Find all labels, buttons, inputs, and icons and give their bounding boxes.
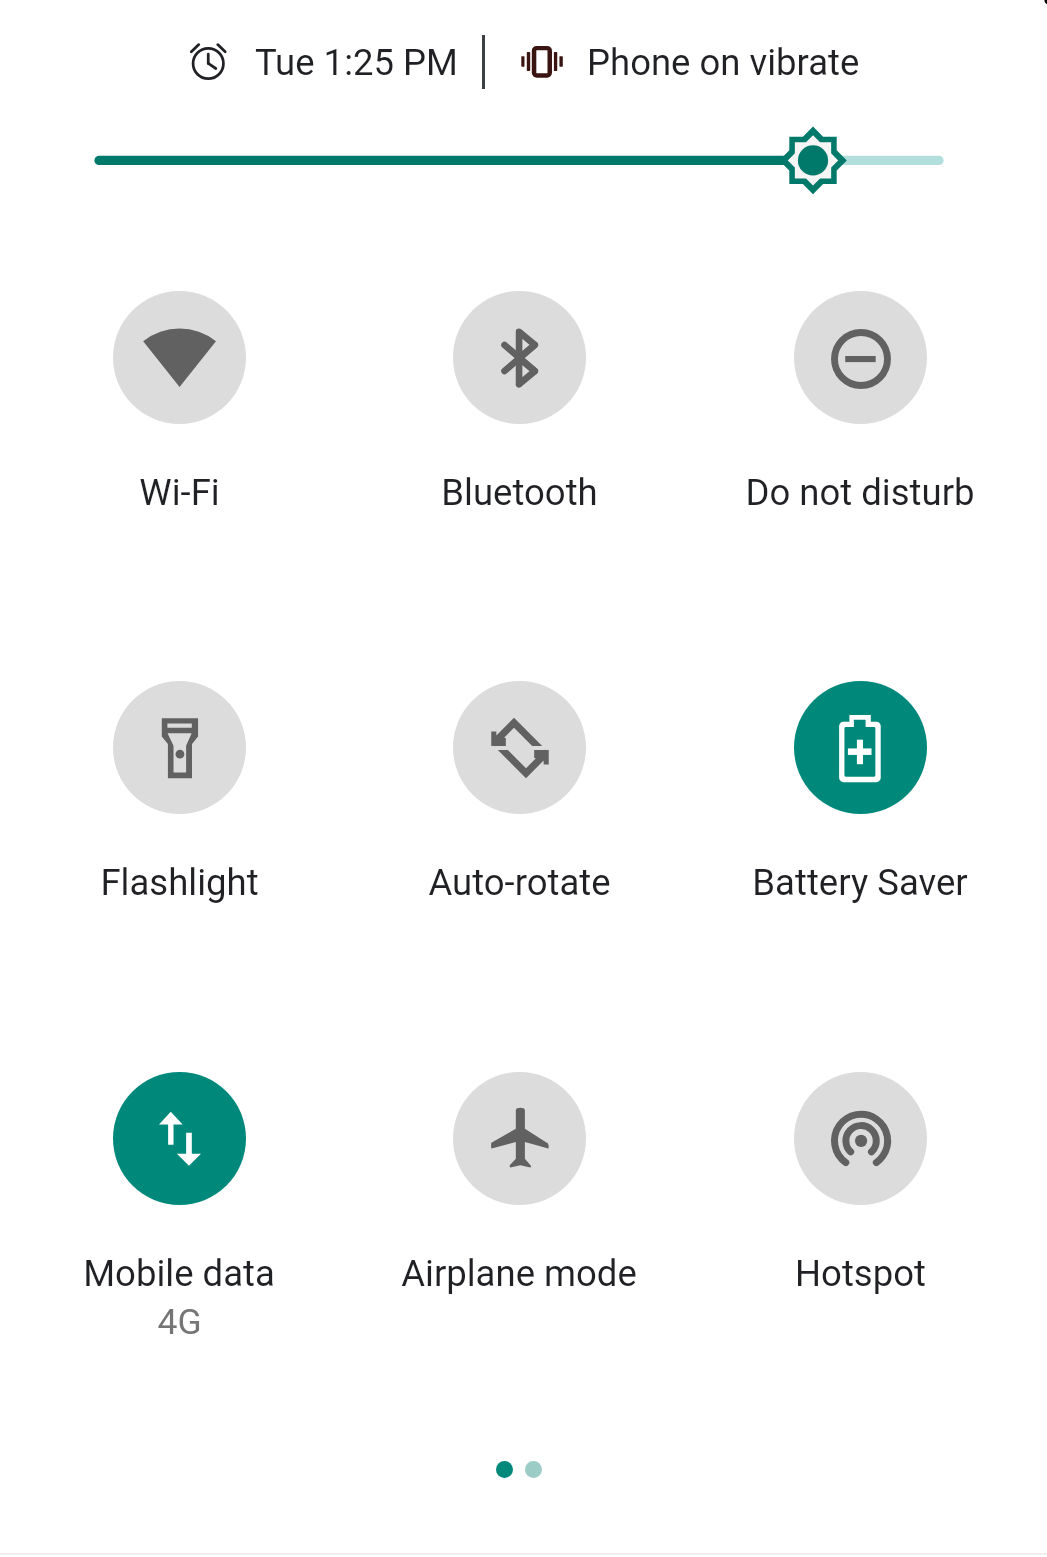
staticText: Auto-rotate bbox=[428, 861, 611, 904]
button[interactable]: Do not disturb bbox=[710, 291, 1010, 514]
staticText: Do not disturb bbox=[745, 471, 975, 514]
staticText: Flashlight bbox=[100, 861, 259, 904]
staticText: Mobile data bbox=[83, 1252, 275, 1295]
button[interactable]: Auto-rotate bbox=[369, 681, 669, 904]
button[interactable]: Tue 1:25 PM bbox=[187, 36, 455, 88]
button[interactable]: Airplane mode bbox=[369, 1072, 669, 1295]
button[interactable]: Mobile data bbox=[29, 1072, 329, 1343]
button[interactable]: Brightness bbox=[0, 118, 1047, 204]
staticText: 4G bbox=[157, 1301, 202, 1343]
button[interactable]: Battery Saver bbox=[710, 681, 1010, 904]
staticText: Hotspot bbox=[795, 1252, 926, 1295]
staticText: Wi-Fi bbox=[139, 471, 220, 514]
button[interactable]: Bluetooth bbox=[369, 291, 669, 514]
staticText: Phone on vibrate bbox=[587, 41, 860, 84]
button[interactable]: Phone on vibrate bbox=[516, 36, 861, 92]
staticText: Airplane mode bbox=[401, 1252, 637, 1295]
button[interactable]: Flashlight bbox=[29, 681, 329, 904]
staticText: Battery Saver bbox=[752, 861, 968, 904]
staticText: Bluetooth bbox=[441, 471, 598, 514]
button[interactable]: Page 1 of 2 bbox=[496, 1460, 542, 1478]
button[interactable]: Hotspot bbox=[710, 1072, 1010, 1295]
button[interactable]: Wi-Fi bbox=[29, 291, 329, 514]
staticText: Tue 1:25 PM bbox=[255, 41, 458, 84]
